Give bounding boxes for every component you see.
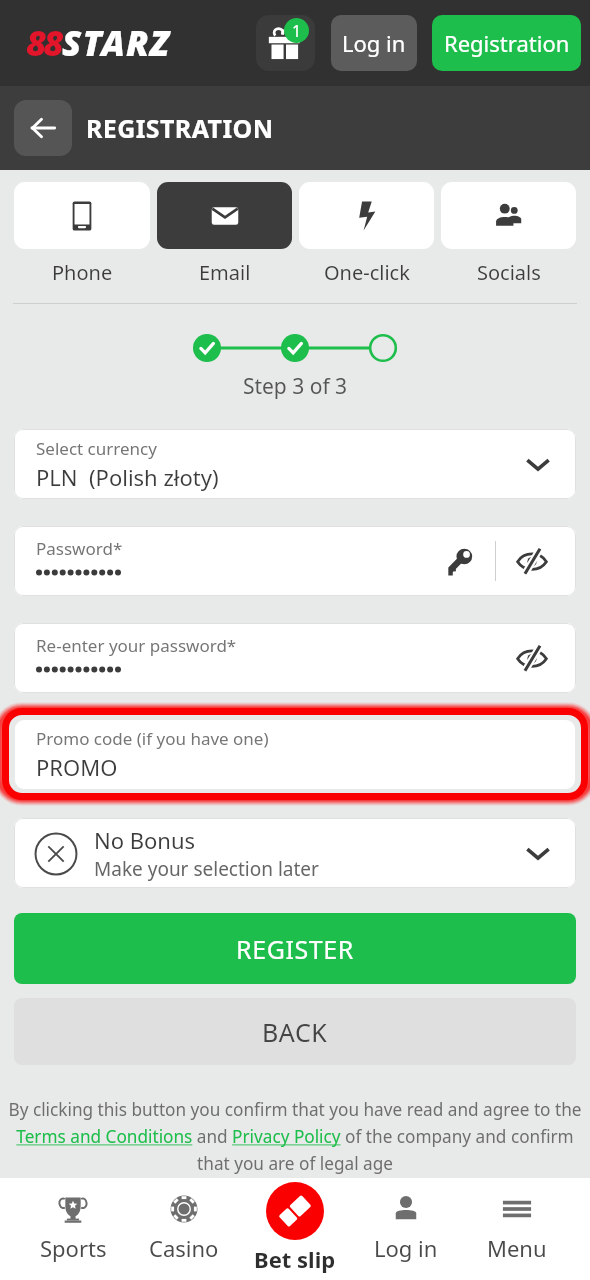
staticText: STARZ [62, 19, 171, 67]
button[interactable]: Promo code (if you have one) [15, 720, 575, 789]
staticText: Email [199, 259, 251, 286]
button[interactable]: Re-enter your password* [14, 623, 576, 693]
button[interactable]: 88Starz home [26, 19, 171, 67]
button[interactable]: Log in [331, 15, 417, 71]
staticText: No Bonus [94, 825, 196, 855]
staticText: Sports [40, 1233, 107, 1263]
staticText: Step 3 of 3 [0, 372, 590, 401]
staticText: Log in [374, 1233, 438, 1263]
staticText: Password* [36, 537, 123, 560]
button[interactable]: Show password [516, 545, 548, 577]
staticText: Select currency [36, 437, 157, 460]
staticText: PROMO [36, 752, 118, 782]
staticText: Casino [149, 1233, 219, 1263]
staticText: Menu [487, 1233, 547, 1263]
staticText: BACK [262, 1015, 328, 1049]
staticText: Log in [342, 28, 406, 58]
staticText: By clicking this button you confirm that… [0, 1098, 590, 1175]
staticText: Bet slip [254, 1244, 336, 1274]
staticText: Make your selection later [94, 856, 319, 882]
button[interactable]: Back [14, 100, 72, 156]
staticText: PLN (Polish złoty) [36, 462, 219, 492]
button[interactable]: Socials [441, 182, 576, 286]
staticText: Socials [477, 259, 541, 286]
button[interactable]: Log in [350, 1178, 461, 1280]
button[interactable]: Phone [14, 182, 150, 286]
other: Bet slip [266, 1182, 324, 1240]
button[interactable]: By clicking this button you confirm that… [0, 1098, 590, 1175]
button[interactable]: BACK [14, 998, 576, 1065]
staticText: Phone [52, 259, 113, 286]
staticText: Promo code (if you have one) [36, 727, 269, 750]
button[interactable]: Casino [128, 1178, 239, 1280]
button[interactable]: Bonuses [256, 15, 315, 71]
button[interactable]: Sports [18, 1178, 128, 1280]
button[interactable]: Email [157, 182, 292, 286]
button[interactable]: Bet slip [239, 1178, 350, 1280]
staticText: 1 [292, 20, 302, 42]
button[interactable]: Generate password [444, 545, 476, 577]
staticText: Registration [444, 28, 570, 58]
button[interactable]: Select currency [14, 429, 576, 499]
button[interactable]: One-click [299, 182, 434, 286]
button[interactable]: Show password [516, 642, 548, 674]
button[interactable]: REGISTER [14, 913, 576, 984]
staticText: One-click [324, 259, 410, 286]
staticText: REGISTER [236, 932, 355, 966]
button[interactable]: Password* [14, 526, 576, 596]
button[interactable]: Menu [461, 1178, 572, 1280]
button[interactable]: Registration [432, 15, 581, 71]
staticText: REGISTRATION [86, 111, 274, 145]
staticText: 88 [26, 19, 61, 67]
staticText: Re-enter your password* [36, 634, 237, 657]
button[interactable]: No Bonus [14, 818, 576, 888]
